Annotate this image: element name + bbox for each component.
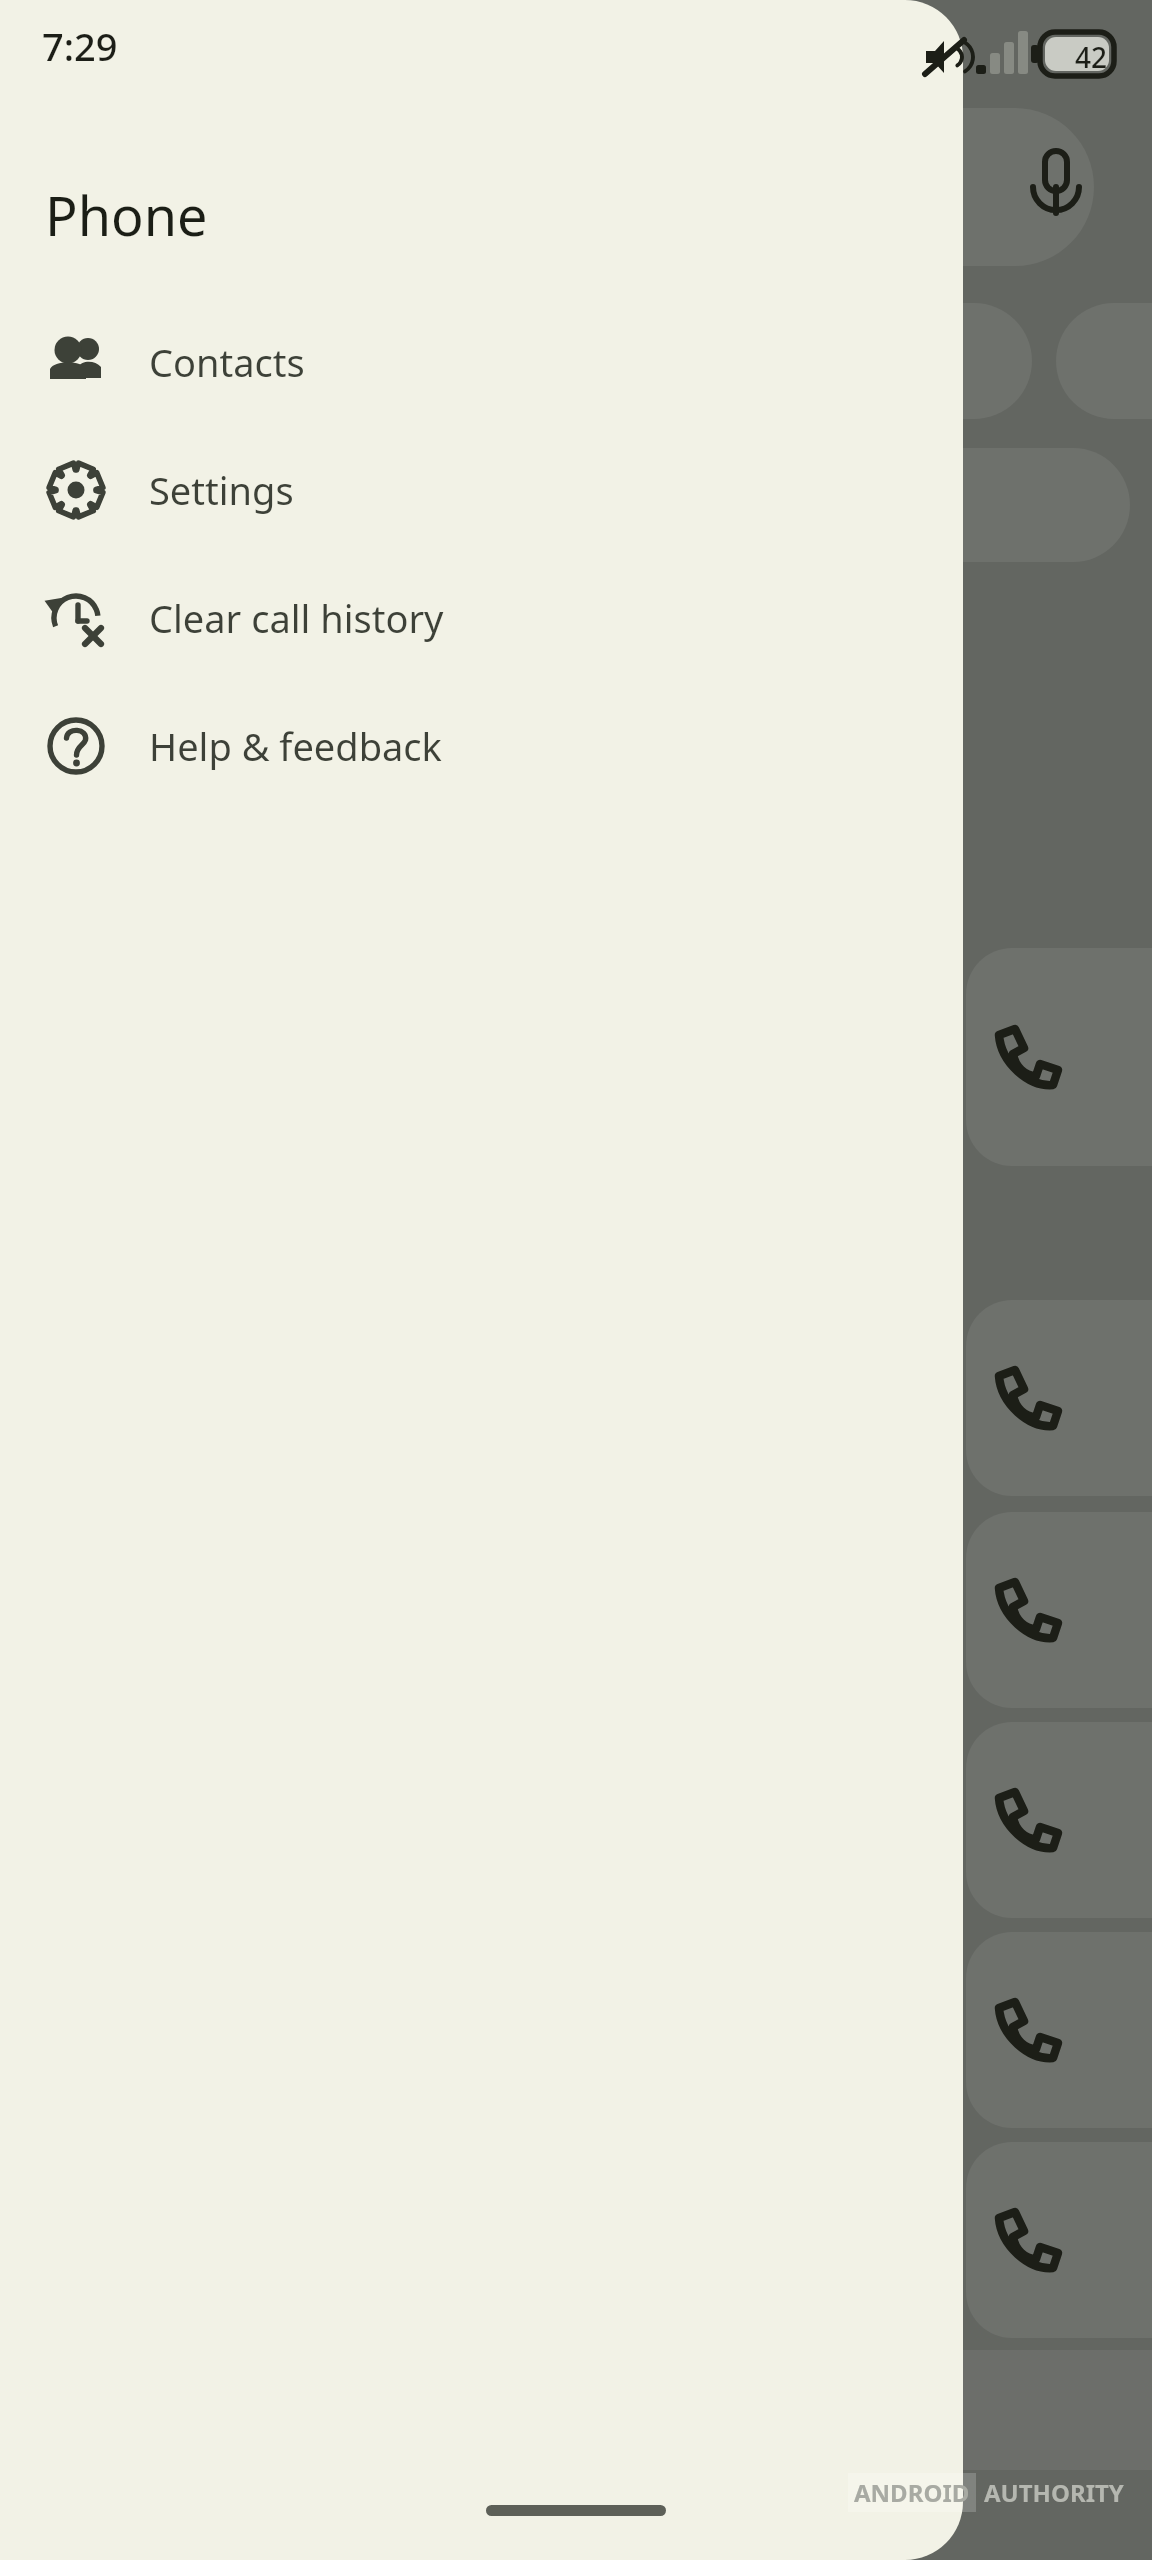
staticText: Clear call history	[149, 592, 444, 644]
staticText: AUTHORITY	[984, 2476, 1124, 2509]
button[interactable]: Settings	[0, 426, 963, 554]
staticText: Contacts	[149, 336, 305, 388]
button[interactable]: Phone	[0, 0, 963, 2560]
button[interactable]: Contacts	[0, 298, 963, 426]
staticText: 42	[1075, 38, 1108, 76]
button[interactable]: Help & feedback	[0, 682, 963, 810]
staticText: Help & feedback	[149, 720, 442, 772]
staticText: 7:29	[42, 20, 118, 72]
staticText: Settings	[149, 464, 294, 516]
staticText: ANDROID	[854, 2476, 970, 2509]
button[interactable]: Clear call history	[0, 554, 963, 682]
staticText: Phone	[45, 178, 208, 252]
